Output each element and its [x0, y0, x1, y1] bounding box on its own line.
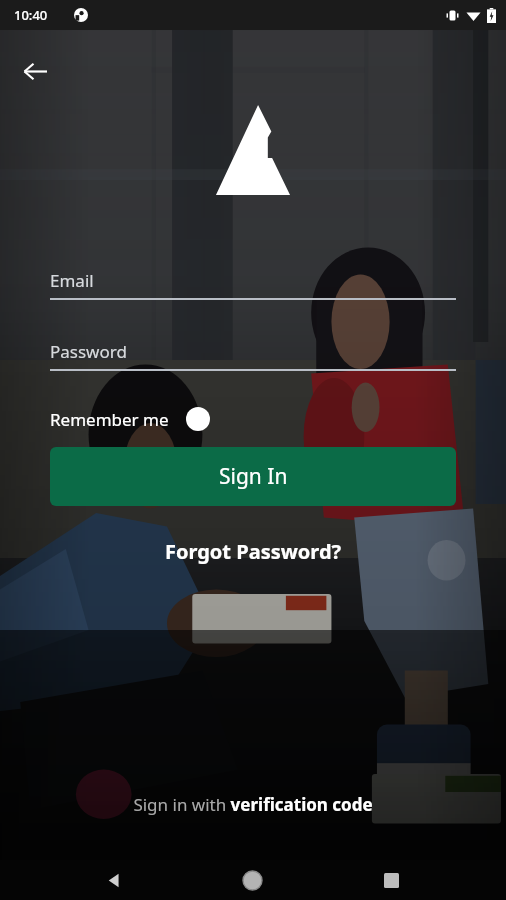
button[interactable]: Back — [90, 860, 138, 900]
button[interactable]: Recent apps — [367, 860, 415, 900]
staticText: Sign in with verification code — [133, 793, 373, 816]
staticText: Remember me — [50, 408, 169, 431]
button[interactable]: Forgot Password? — [149, 530, 358, 573]
button[interactable]: Email — [50, 256, 456, 292]
staticText: Password — [50, 340, 127, 363]
staticText: Forgot Password? — [165, 538, 342, 565]
button[interactable]: Password — [50, 327, 456, 363]
staticText: Sign In — [219, 462, 288, 491]
button[interactable]: Back — [12, 48, 58, 94]
staticText: 10:40 — [14, 6, 48, 24]
button[interactable]: Remember me — [50, 403, 211, 435]
button[interactable]: Sign In — [50, 447, 456, 506]
button[interactable]: Sign in with verification code — [115, 783, 391, 826]
button[interactable]: Home — [228, 860, 276, 900]
staticText: Email — [50, 269, 94, 292]
